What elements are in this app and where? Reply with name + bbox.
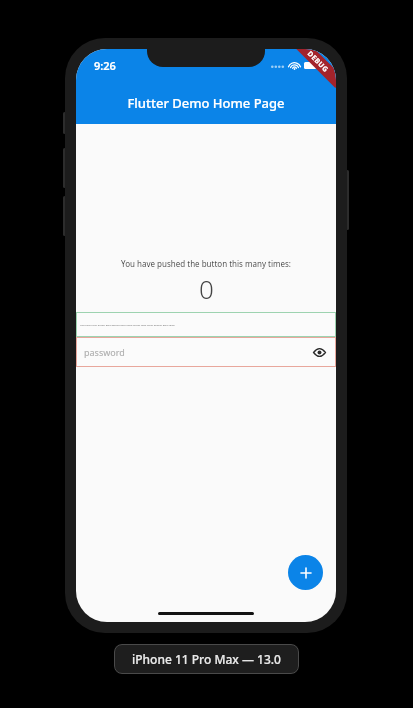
staticText: Flutter Demo Home Page: [127, 94, 285, 112]
button[interactable]: password: [76, 337, 336, 367]
staticText: iPhone 11 Pro Max — 13.0: [132, 651, 281, 667]
staticText: password: [84, 346, 125, 358]
button[interactable]: the flutter first flutter field default …: [76, 312, 336, 337]
staticText: the flutter first flutter field default …: [80, 323, 175, 326]
staticText: 9:26: [94, 58, 116, 73]
button[interactable]: iPhone 11 Pro Max — 13.0: [114, 644, 299, 674]
staticText: DEBUG: [305, 49, 331, 75]
button[interactable]: Toggle password visibility: [310, 343, 328, 361]
staticText: 0: [199, 271, 214, 306]
button[interactable]: Increment: [288, 555, 323, 590]
staticText: You have pushed the button this many tim…: [121, 258, 291, 269]
